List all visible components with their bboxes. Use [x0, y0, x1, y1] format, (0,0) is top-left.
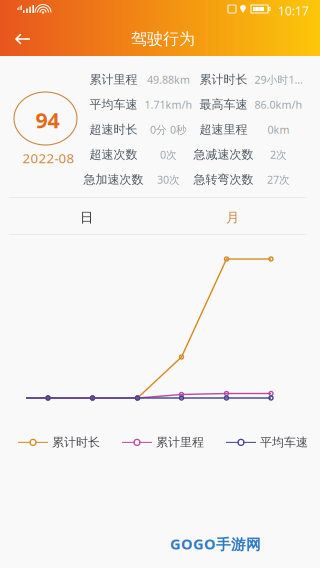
staticText: 29小时1…	[254, 72, 302, 87]
staticText: 0km	[267, 122, 289, 137]
staticText: 94	[35, 106, 59, 134]
staticText: GOGO手游网	[170, 534, 261, 554]
staticText: 10:17	[278, 3, 309, 19]
staticText: 30次	[157, 172, 180, 187]
staticText: 0分 0秒	[150, 122, 187, 137]
staticText: 日	[80, 209, 93, 226]
staticText: 累计里程	[156, 435, 204, 450]
button[interactable]: 日	[13, 199, 159, 236]
staticText: 超速里程	[199, 122, 247, 137]
staticText: 平均车速	[89, 97, 137, 112]
staticText: 月	[226, 209, 239, 226]
staticText: 驾驶行为	[131, 29, 195, 49]
staticText: 2022-08	[22, 149, 74, 167]
button[interactable]: 月	[159, 199, 305, 236]
staticText: 0次	[160, 147, 177, 162]
staticText: 平均车速	[260, 435, 308, 450]
staticText: 49.88km	[147, 72, 190, 87]
staticText: 累计里程	[89, 72, 137, 87]
staticText: 86.0km/h	[254, 97, 302, 112]
staticText: 急加速次数	[83, 172, 143, 187]
staticText: 最高车速	[199, 97, 247, 112]
staticText: 急减速次数	[193, 147, 253, 162]
button[interactable]: 累计里程	[122, 435, 204, 450]
staticText: 累计时长	[52, 435, 100, 450]
button[interactable]: Back	[0, 22, 46, 56]
button[interactable]: 累计时长	[18, 435, 100, 450]
staticText: 2次	[270, 147, 287, 162]
staticText: 累计时长	[199, 72, 247, 87]
staticText: 急转弯次数	[193, 172, 253, 187]
staticText: 1.71km/h	[144, 97, 192, 112]
staticText: 超速次数	[89, 147, 137, 162]
button[interactable]: 平均车速	[226, 435, 308, 450]
staticText: 27次	[267, 172, 290, 187]
staticText: 超速时长	[89, 122, 137, 137]
